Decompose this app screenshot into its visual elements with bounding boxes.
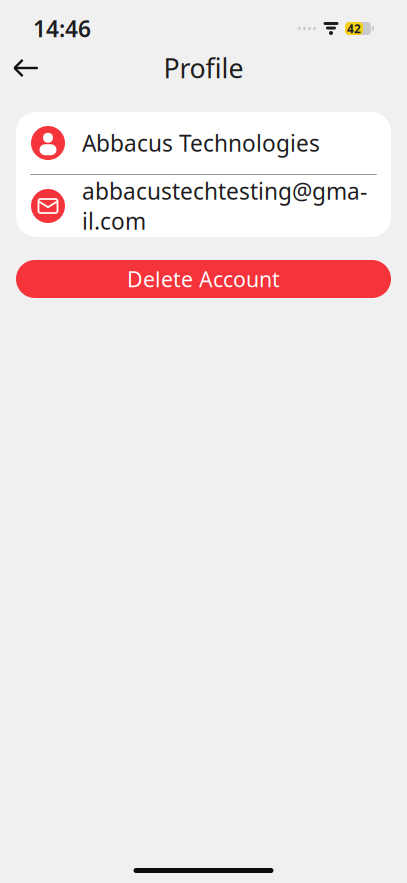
- button[interactable]: Abbacus Technologies: [16, 112, 391, 174]
- button[interactable]: abbacustechtesting@gmail.com: [16, 175, 391, 237]
- staticText: Delete Account: [127, 265, 280, 293]
- staticText: Profile: [163, 50, 243, 86]
- staticText: 42: [347, 20, 361, 36]
- staticText: abbacustechtesting@gmail.com: [82, 176, 367, 236]
- staticText: 14:46: [33, 13, 91, 43]
- staticText: Abbacus Technologies: [82, 128, 320, 158]
- button[interactable]: Delete Account: [16, 260, 391, 298]
- button[interactable]: Back: [0, 46, 52, 90]
